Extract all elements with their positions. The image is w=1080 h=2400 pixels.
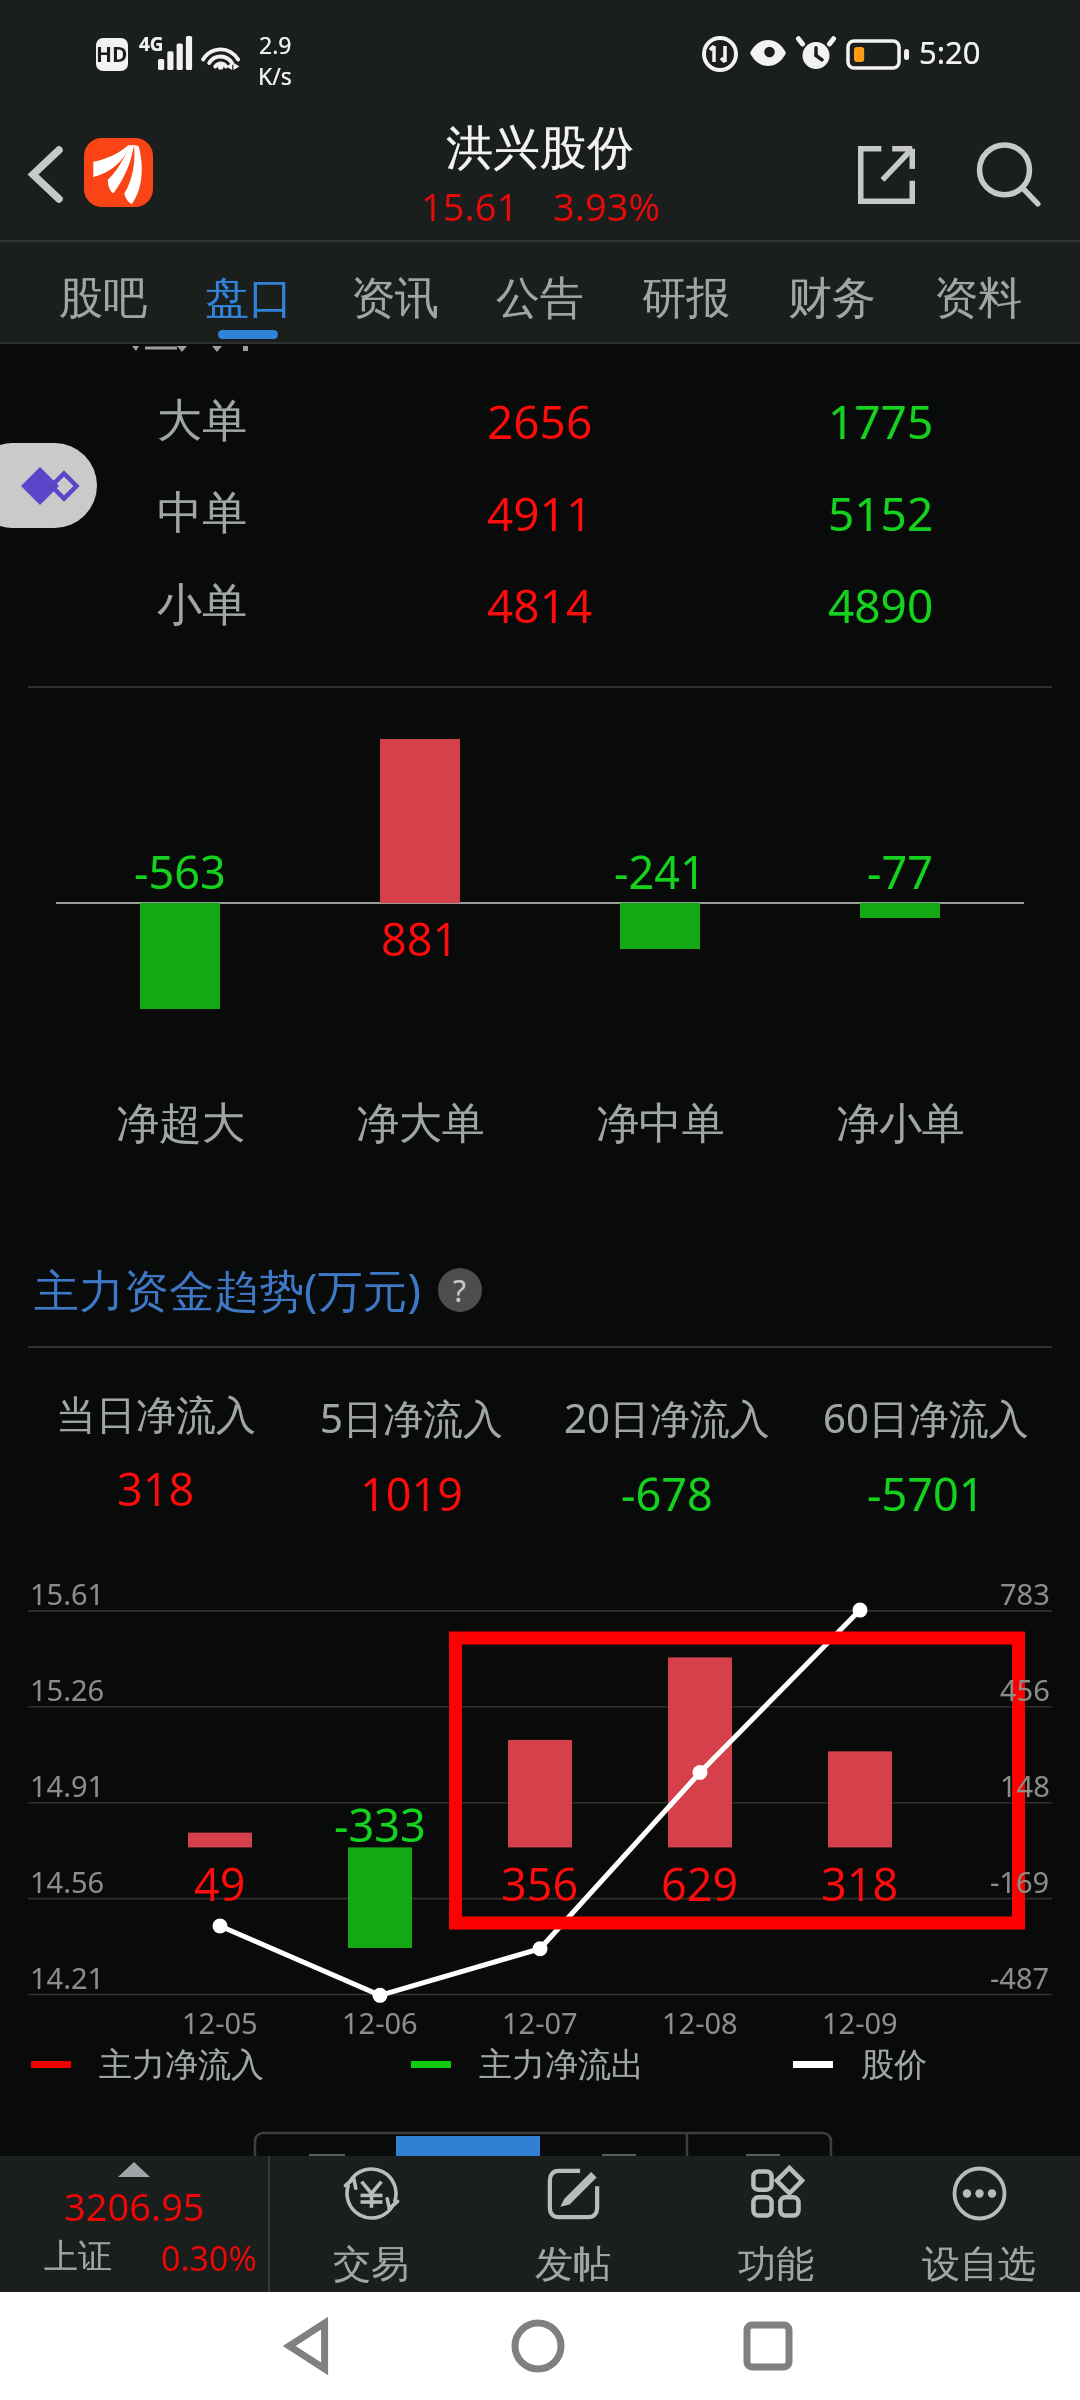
staticText: -77 [867,841,933,902]
staticText: 发帖 [535,2240,611,2288]
staticText: -563 [134,841,226,902]
staticText: 5152 [828,482,934,545]
staticText: 2656 [487,390,593,453]
staticText: 上证 [44,2235,112,2278]
staticText: 148 [1000,1766,1050,1805]
button[interactable]: 公告 [467,242,613,344]
staticText: 净超大 [116,1097,245,1151]
staticText: 净中单 [596,1097,725,1151]
staticText: 功能 [738,2240,814,2288]
button[interactable]: 返回 [4,133,88,215]
button[interactable]: 东方财富 [84,138,153,207]
staticText: 当日净流入 [56,1390,256,1440]
staticText: 研报 [642,271,730,326]
staticText: ? [453,1270,467,1311]
staticText: K/s [258,60,292,91]
button[interactable]: 主页 [483,2292,593,2400]
staticText: 12-09 [822,2003,898,2042]
staticText: 12-06 [342,2003,418,2042]
staticText: 2.9 [259,29,292,60]
staticText: 5日净流入 [320,1390,503,1445]
staticText: 净小单 [836,1097,965,1151]
staticText: 主力净流出 [479,2044,644,2086]
staticText: 主力资金趋势(万元) [34,1259,422,1320]
button[interactable]: 中单 [0,468,1080,558]
button[interactable]: 设自选 [877,2156,1080,2292]
button[interactable]: 3206.95 [0,2156,268,2292]
staticText: 4814 [487,574,593,637]
staticText: HD [96,40,128,69]
staticText: 12-05 [182,2003,258,2042]
button[interactable]: 功能 [674,2156,877,2292]
button[interactable]: 分享 [836,130,936,220]
staticText: 3.93% [553,180,660,232]
staticText: 456 [1000,1670,1050,1709]
staticText: 12-08 [662,2003,738,2042]
staticText: 交易 [333,2240,409,2288]
button[interactable]: 发帖 [472,2156,674,2292]
staticText: 15.26 [30,1670,105,1709]
staticText: 小单 [157,577,247,634]
staticText: 49 [194,1853,246,1914]
staticText: -169 [990,1862,1050,1901]
button[interactable]: 财务 [759,242,905,344]
staticText: 14.21 [30,1958,105,1997]
staticText: 资料 [934,271,1022,326]
staticText: 公告 [496,271,584,326]
button[interactable]: 最近任务 [713,2292,823,2400]
staticText: 60日净流入 [823,1390,1029,1445]
button[interactable]: 搜索 [959,130,1059,220]
staticText: 股吧 [59,271,147,326]
button[interactable]: 研报 [613,242,759,344]
button[interactable]: 小单 [0,560,1080,650]
staticText: 中单 [157,485,247,542]
staticText: 4911 [487,482,593,545]
staticText: -487 [990,1958,1050,1997]
staticText: 356 [501,1853,579,1914]
staticText: 5:20 [919,31,981,73]
button[interactable]: 悬浮助手 [0,443,97,528]
button[interactable] [254,2132,832,2158]
button[interactable]: 资讯 [322,242,468,344]
staticText: 盘口 [205,271,293,326]
staticText: 4890 [828,574,934,637]
staticText: 1019 [360,1463,463,1524]
staticText: 资讯 [351,271,439,326]
staticText: 629 [661,1853,739,1914]
staticText: 14.91 [30,1766,105,1805]
staticText: 3206.95 [64,2180,205,2232]
button[interactable]: 帮助 [438,1268,482,1312]
staticText: 大单 [157,393,247,450]
staticText: 洪兴股份 [446,119,634,178]
staticText: 股价 [861,2044,927,2086]
staticText: 318 [821,1853,899,1914]
button[interactable]: 大单 [0,376,1080,466]
staticText: 15.61 [421,180,519,232]
staticText: 318 [117,1458,195,1519]
staticText: 1775 [828,390,934,453]
staticText: 881 [381,908,459,969]
button[interactable]: 资料 [905,242,1051,344]
staticText: -5701 [867,1463,985,1524]
button[interactable]: 交易 [270,2156,472,2292]
staticText: 主力净流入 [99,2044,264,2086]
staticText: 783 [1000,1574,1050,1613]
staticText: 15.61 [30,1574,105,1613]
staticText: 20日净流入 [564,1390,770,1445]
staticText: -241 [614,841,706,902]
staticText: 净大单 [356,1097,485,1151]
staticText: 4G [139,31,164,57]
button[interactable]: 盘口 [176,242,322,344]
staticText: 设自选 [922,2240,1036,2288]
button[interactable]: 股吧 [30,242,176,344]
staticText: 财务 [788,271,876,326]
staticText: -678 [621,1463,713,1524]
staticText: 14.56 [30,1862,105,1901]
staticText: 12-07 [502,2003,578,2042]
staticText: -333 [334,1794,426,1855]
button[interactable]: 返回 [254,2292,364,2400]
staticText: 0.30% [161,2235,257,2281]
